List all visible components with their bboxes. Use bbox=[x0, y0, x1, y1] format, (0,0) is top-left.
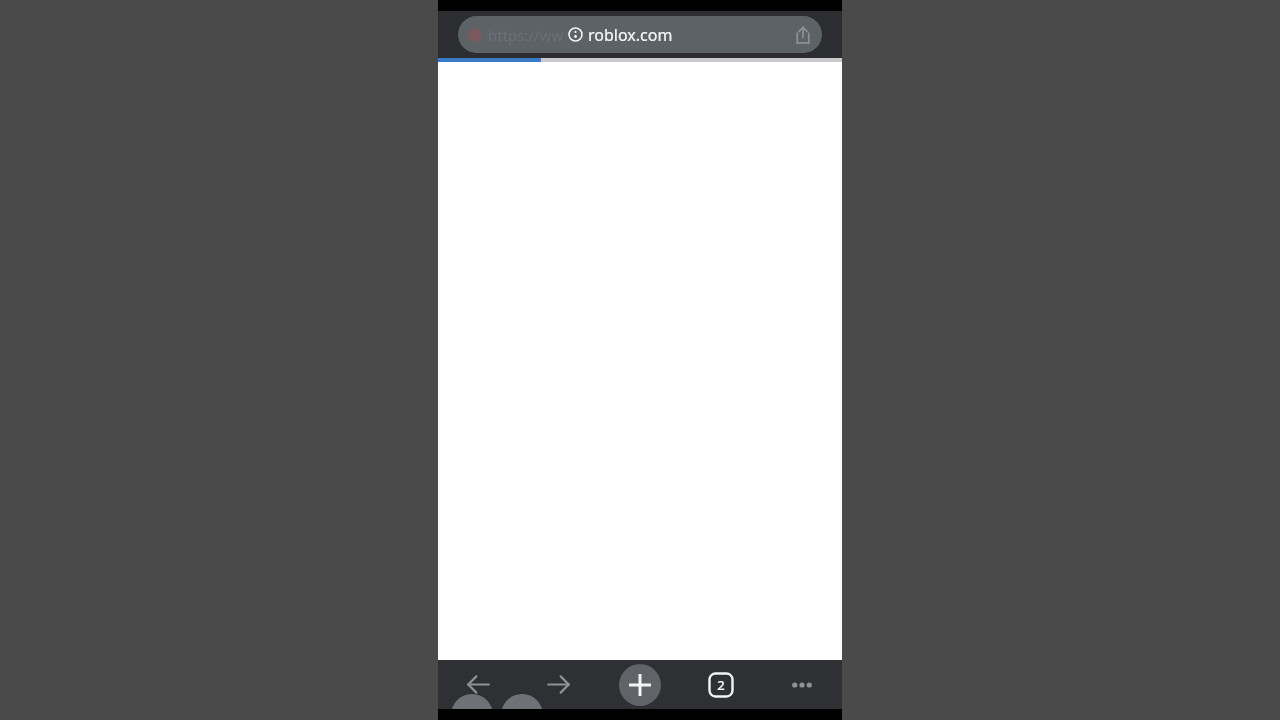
button[interactable]: https://ww bbox=[458, 16, 822, 53]
button[interactable]: Tabs bbox=[680, 660, 761, 709]
button[interactable]: New tab bbox=[599, 660, 680, 709]
button[interactable]: Back bbox=[438, 660, 518, 709]
staticText: https://ww bbox=[488, 25, 564, 45]
button[interactable]: Share bbox=[788, 20, 818, 50]
staticText: 2 bbox=[717, 676, 725, 694]
button[interactable]: Forward bbox=[518, 660, 599, 709]
staticText: roblox.com bbox=[588, 24, 673, 46]
button[interactable]: More options bbox=[761, 660, 842, 709]
